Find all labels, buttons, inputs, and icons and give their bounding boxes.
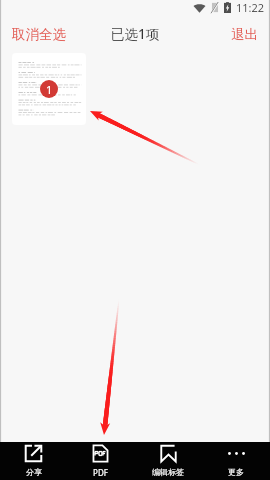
staticText: 1 — [46, 82, 53, 97]
staticText: 11:22 — [236, 0, 265, 15]
staticText: 退出 — [231, 26, 258, 43]
staticText: 分享 — [26, 467, 42, 477]
button[interactable]: 编辑标签 — [134, 442, 202, 480]
staticText: 编辑标签 — [152, 467, 184, 477]
button[interactable]: 退出 — [221, 20, 270, 49]
button[interactable]: 分享 — [0, 442, 67, 480]
staticText: 已选1项 — [111, 25, 160, 43]
button[interactable]: 更多 — [202, 442, 270, 480]
button[interactable]: 选中的文档 — [12, 53, 86, 125]
staticText: 更多 — [228, 467, 244, 477]
staticText: 取消全选 — [12, 26, 66, 43]
button[interactable]: 取消全选 — [0, 20, 76, 49]
staticText: PDF — [93, 467, 108, 478]
button[interactable]: PDF — [67, 442, 134, 480]
